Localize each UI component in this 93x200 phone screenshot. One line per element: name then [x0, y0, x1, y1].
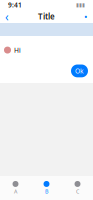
staticText: 9:41	[8, 1, 22, 9]
staticText: Hi	[14, 46, 21, 54]
staticText: ‹	[5, 8, 9, 24]
staticText: ▮▮▮	[76, 2, 85, 8]
staticText: •	[84, 10, 88, 23]
staticText: Ok	[75, 66, 84, 75]
staticText: A	[14, 188, 17, 195]
button[interactable]: B	[31, 181, 62, 195]
button[interactable]: C	[62, 181, 93, 195]
staticText: B	[45, 188, 48, 195]
staticText: C	[76, 188, 79, 195]
button[interactable]: A	[0, 181, 31, 195]
staticText: Title	[38, 11, 55, 22]
